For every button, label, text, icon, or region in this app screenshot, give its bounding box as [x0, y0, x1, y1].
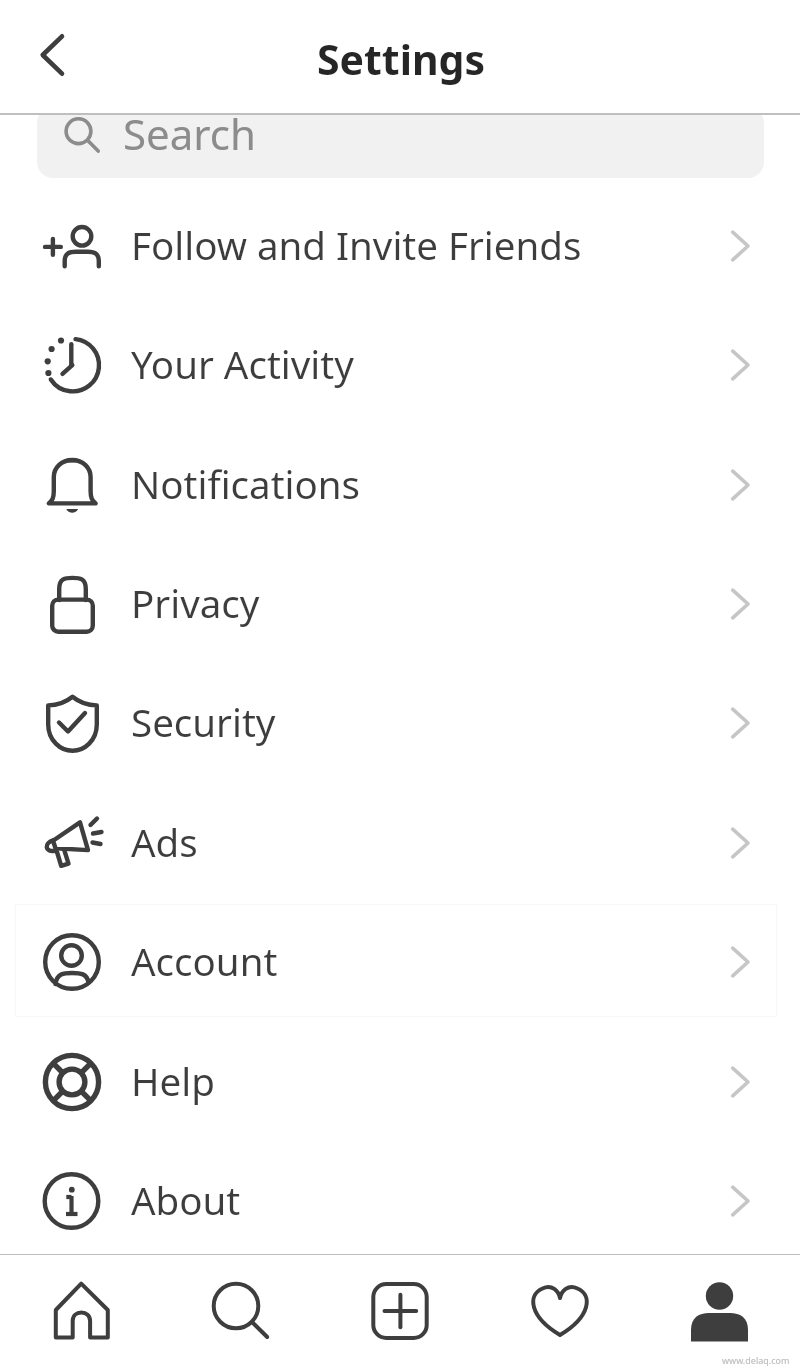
button[interactable]: Search — [37, 107, 764, 178]
button[interactable]: Notifications — [0, 425, 800, 544]
button[interactable]: Profile — [640, 1255, 800, 1369]
button[interactable]: Search — [160, 1255, 320, 1369]
staticText: Search — [123, 107, 256, 162]
staticText: Your Activity — [131, 338, 354, 390]
staticText: Help — [131, 1055, 215, 1107]
button[interactable]: Create — [320, 1255, 480, 1369]
button[interactable]: Follow and Invite Friends — [0, 186, 800, 305]
staticText: About — [131, 1174, 241, 1226]
staticText: Settings — [317, 31, 486, 87]
button[interactable]: Back — [16, 20, 88, 92]
staticText: Privacy — [131, 577, 260, 629]
button[interactable]: Account — [0, 902, 800, 1021]
staticText: Account — [131, 935, 278, 987]
staticText: Notifications — [131, 458, 360, 510]
button[interactable]: Your Activity — [0, 305, 800, 424]
button[interactable]: Security — [0, 663, 800, 782]
staticText: Follow and Invite Friends — [131, 219, 582, 271]
button[interactable]: Home — [0, 1255, 160, 1369]
staticText: Security — [131, 696, 276, 748]
button[interactable]: Privacy — [0, 544, 800, 663]
button[interactable]: About — [0, 1141, 800, 1260]
button[interactable]: Help — [0, 1022, 800, 1141]
button[interactable]: Ads — [0, 783, 800, 902]
staticText: Ads — [131, 816, 198, 868]
staticText: www.delaq.com — [722, 1354, 790, 1366]
button[interactable]: Activity — [480, 1255, 640, 1369]
